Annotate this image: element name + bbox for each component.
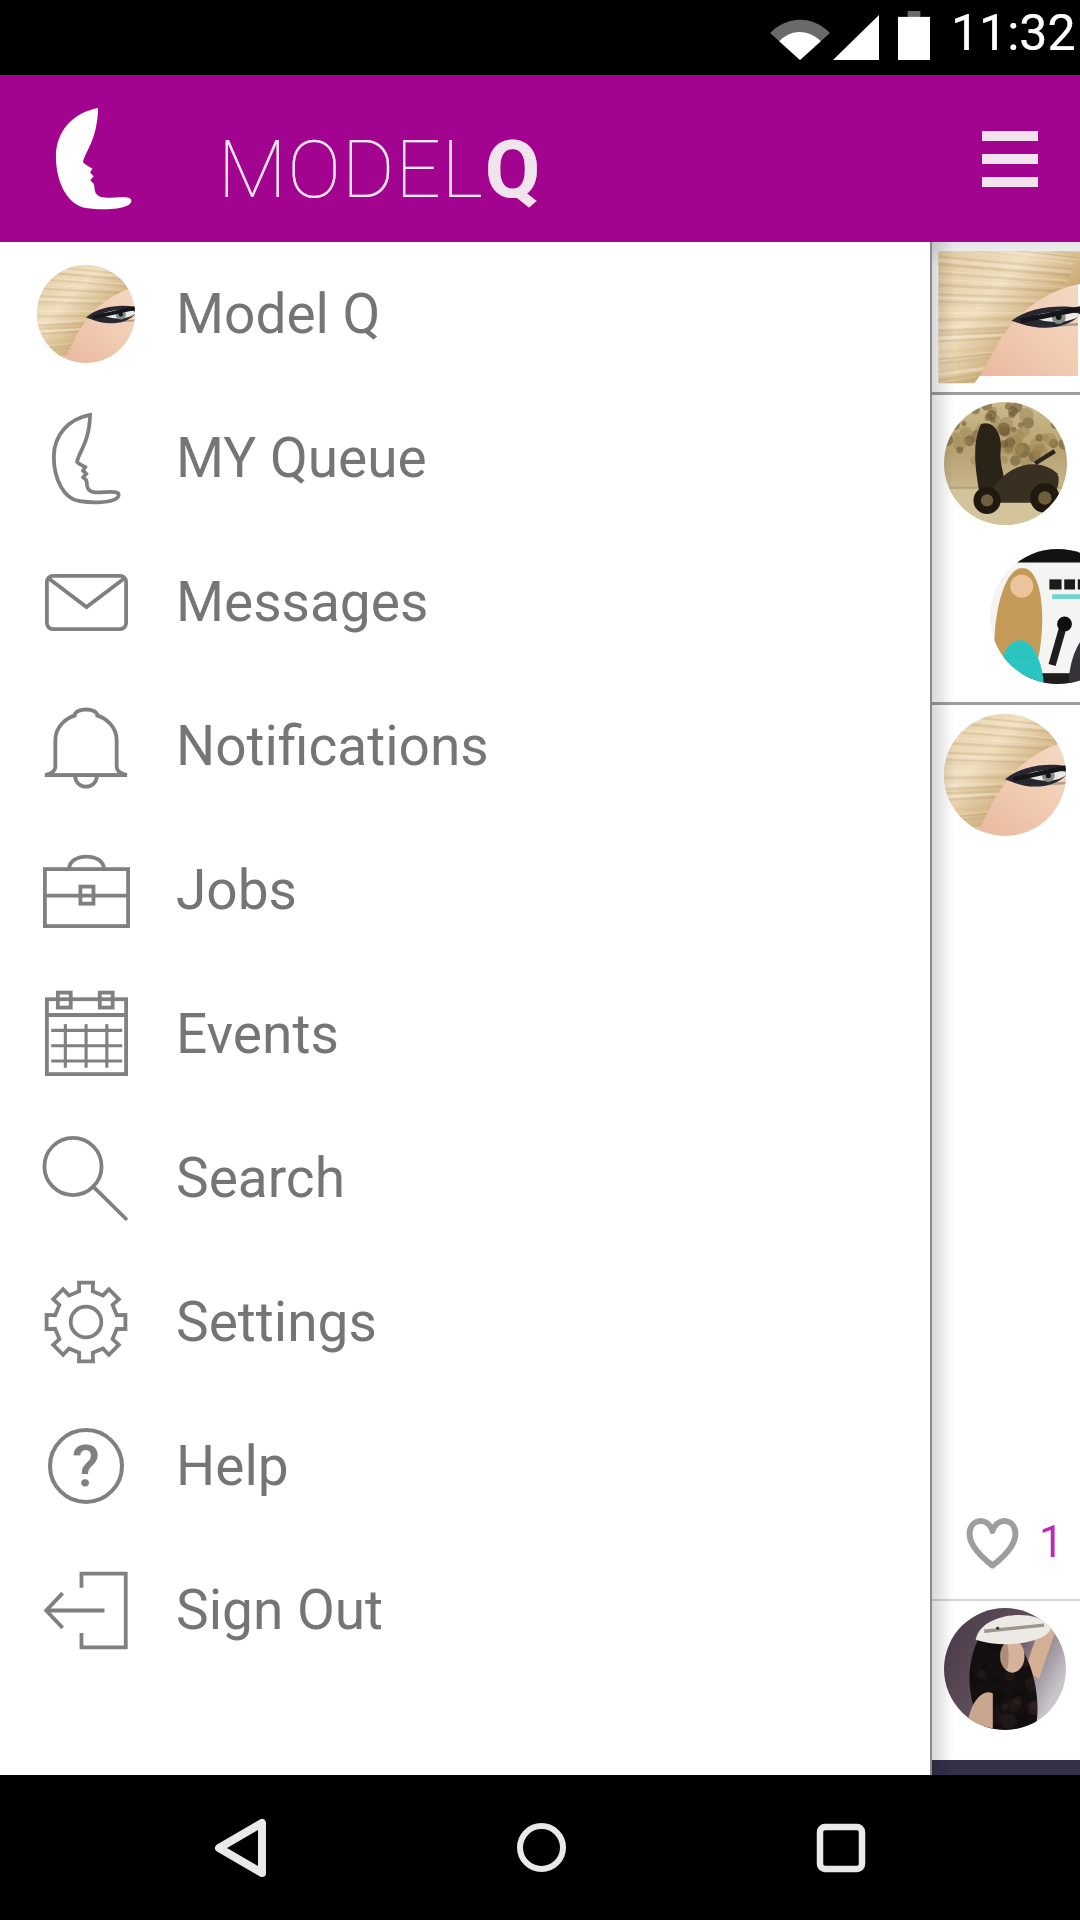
staticText: MODEL <box>218 123 485 217</box>
button[interactable]: Motorcycle photo post <box>944 402 1067 525</box>
staticText: Sign Out <box>176 1578 384 1642</box>
button[interactable]: Notifications <box>0 674 931 818</box>
staticText: Messages <box>176 570 429 634</box>
staticText: Events <box>176 1002 339 1066</box>
button[interactable]: Interview photo post <box>990 549 1080 684</box>
button[interactable]: Open navigation menu <box>960 109 1060 209</box>
button[interactable]: Recent apps <box>771 1775 911 1920</box>
staticText: Jobs <box>176 858 297 922</box>
button[interactable]: Back <box>170 1775 310 1920</box>
button[interactable]: ? <box>0 1394 931 1538</box>
button[interactable]: Jobs <box>0 818 931 962</box>
button[interactable]: Search <box>0 1106 931 1250</box>
staticText: Help <box>176 1434 289 1498</box>
staticText: Q <box>485 123 541 217</box>
staticText: 1 <box>1039 1516 1064 1568</box>
button[interactable]: Model photo post <box>944 1608 1066 1730</box>
staticText: Notifications <box>176 714 489 778</box>
button[interactable]: Sign Out <box>0 1538 931 1682</box>
button[interactable]: Settings <box>0 1250 931 1394</box>
staticText: Search <box>176 1146 345 1210</box>
button[interactable]: Events <box>0 962 931 1106</box>
staticText: Settings <box>176 1290 377 1354</box>
staticText: ? <box>72 1433 100 1500</box>
button[interactable]: Home <box>471 1775 611 1920</box>
button[interactable]: Like <box>967 1516 1064 1568</box>
button[interactable]: MY Queue <box>0 386 931 530</box>
staticText: Model Q <box>176 282 381 346</box>
button[interactable]: Messages <box>0 530 931 674</box>
staticText: MY Queue <box>176 426 427 490</box>
button[interactable]: Photo post <box>945 257 1078 376</box>
button[interactable]: Model Q <box>0 242 931 386</box>
button[interactable]: Profile photo post <box>944 714 1066 836</box>
staticText: 11:32 <box>951 4 1076 63</box>
